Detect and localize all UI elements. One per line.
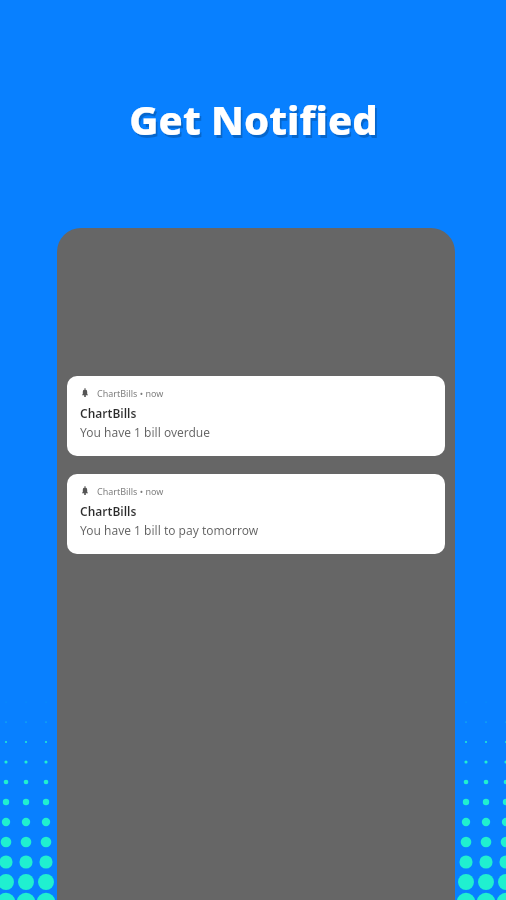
- staticText: Get Notified: [129, 92, 378, 146]
- staticText: ChartBills: [80, 405, 137, 421]
- other: Notification: [80, 486, 90, 496]
- button[interactable]: Notification: [67, 376, 445, 456]
- staticText: ChartBills • now: [97, 485, 164, 497]
- staticText: Get Notified: [131, 95, 380, 149]
- other: Notification: [80, 388, 90, 398]
- staticText: ChartBills: [80, 503, 137, 519]
- staticText: You have 1 bill to pay tomorrow: [80, 522, 259, 538]
- staticText: You have 1 bill overdue: [80, 424, 211, 440]
- button[interactable]: Notification: [67, 474, 445, 554]
- staticText: ChartBills • now: [97, 387, 164, 399]
